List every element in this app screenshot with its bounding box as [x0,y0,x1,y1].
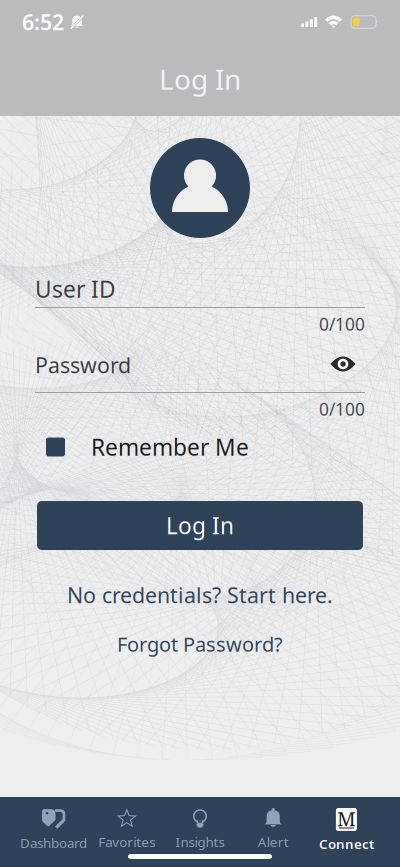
button[interactable]: Insights [163,797,237,867]
staticText: Remember Me [91,432,249,462]
staticText: Password [35,351,131,379]
button[interactable]: Remember Me [46,432,346,462]
button[interactable]: Alert [237,797,310,867]
staticText: User ID [35,274,116,304]
staticText: Log In [159,60,241,98]
staticText: Dashboard [20,834,87,852]
staticText: Alert [258,833,289,851]
button[interactable]: M [310,797,383,867]
staticText: 0/100 [319,397,365,420]
button[interactable]: No credentials? Start here. [35,581,365,609]
button[interactable]: Log In [37,501,363,550]
staticText: 6:52 [22,8,64,36]
staticText: Forgot Password? [117,631,283,657]
staticText: No credentials? Start here. [67,581,333,609]
staticText: Connect [319,835,374,853]
button[interactable]: Forgot Password? [35,630,365,658]
button[interactable]: Dashboard [17,797,90,867]
staticText: 0/100 [319,312,365,335]
button[interactable]: Favorites [90,797,163,867]
button[interactable]: Show password [330,354,356,374]
staticText: Insights [175,833,224,851]
staticText: Log In [166,510,234,540]
staticText: M [337,805,356,832]
staticText: Favorites [98,833,155,851]
